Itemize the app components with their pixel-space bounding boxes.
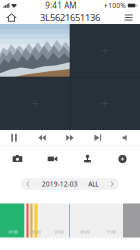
button[interactable]: Pause <box>0 130 28 145</box>
button[interactable]: Camera 1 <box>0 24 70 77</box>
button[interactable]: Record <box>35 146 70 172</box>
staticText: ALL <box>88 180 98 188</box>
button[interactable]: Home <box>5 12 18 23</box>
button[interactable]: Zoom <box>105 146 140 172</box>
button[interactable]: Next day <box>107 181 117 187</box>
staticText: 05:00 <box>31 229 40 234</box>
staticText: 2019-12-03 <box>42 180 78 188</box>
button[interactable]: Rewind <box>28 130 56 145</box>
staticText: 07:00 <box>54 229 63 234</box>
staticText: 11:00 <box>106 229 115 234</box>
button[interactable]: 2019-12-03 <box>40 180 80 188</box>
button[interactable]: Menu <box>122 12 135 23</box>
button[interactable]: Previous day <box>23 181 33 187</box>
staticText: 09:00 <box>80 229 89 234</box>
staticText: 100% <box>108 1 126 10</box>
staticText: 01:00 <box>8 229 17 234</box>
button[interactable]: Volume <box>112 130 140 145</box>
button[interactable]: PTZ <box>70 146 105 172</box>
button[interactable]: ALL <box>86 180 100 188</box>
staticText: 9:41 AM <box>45 0 76 11</box>
button[interactable]: Next frame <box>84 130 112 145</box>
button[interactable]: Fast forward <box>56 130 84 145</box>
staticText: 3L5621651136 <box>40 11 100 24</box>
button[interactable]: Snapshot <box>0 146 35 172</box>
